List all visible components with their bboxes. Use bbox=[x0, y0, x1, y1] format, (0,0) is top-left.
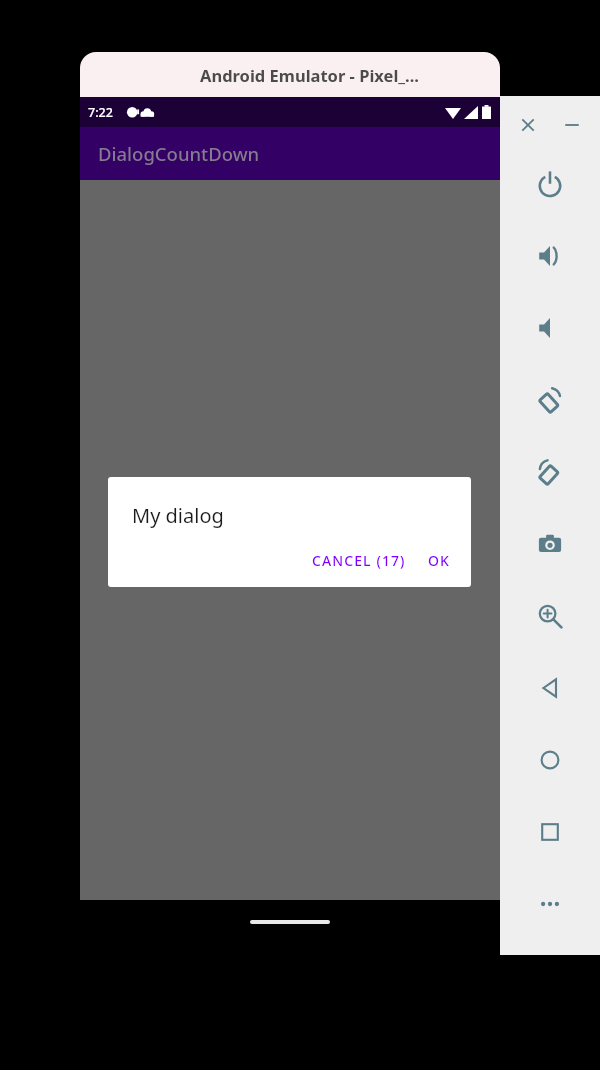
button[interactable]: Overview bbox=[514, 796, 586, 868]
button[interactable]: Zoom bbox=[514, 580, 586, 652]
staticText: 7:22 bbox=[88, 104, 113, 121]
button[interactable]: Power bbox=[514, 148, 586, 220]
button[interactable]: More bbox=[514, 868, 586, 940]
staticText: My dialog bbox=[132, 502, 224, 529]
button[interactable]: Minimize bbox=[555, 108, 589, 142]
button[interactable]: Volume up bbox=[514, 220, 586, 292]
button[interactable]: Back bbox=[514, 652, 586, 724]
button[interactable]: Rotate right bbox=[514, 436, 586, 508]
button[interactable]: Take screenshot bbox=[514, 508, 586, 580]
staticText: CANCEL (17) bbox=[312, 551, 406, 570]
button[interactable]: Rotate left bbox=[514, 364, 586, 436]
staticText: DialogCountDown bbox=[98, 141, 260, 166]
button[interactable]: Close bbox=[511, 108, 545, 142]
staticText: OK bbox=[428, 551, 451, 570]
button[interactable]: Volume down bbox=[514, 292, 586, 364]
button[interactable]: Home bbox=[514, 724, 586, 796]
staticText: Android Emulator - Pixel_... bbox=[200, 64, 419, 86]
button[interactable]: CANCEL (17) bbox=[304, 543, 414, 578]
button[interactable]: OK bbox=[420, 543, 459, 578]
